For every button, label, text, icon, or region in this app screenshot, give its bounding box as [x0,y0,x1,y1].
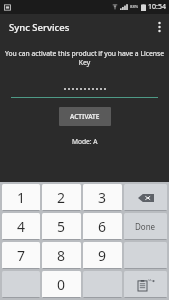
button[interactable]: 2 [42,184,81,211]
button[interactable]: Symbols [2,271,40,298]
staticText: 0 [57,275,66,294]
staticText: 7 [17,246,26,265]
staticText: 8 [57,246,66,265]
staticText: Done [135,221,156,232]
staticText: 4 [17,217,26,236]
button[interactable]: Backspace [124,184,167,211]
button[interactable]: Space [83,271,122,298]
button[interactable]: 8 [42,242,81,269]
button[interactable]: 6 [83,213,122,240]
staticText: 10:54 [148,2,166,12]
staticText: 6 [98,217,107,236]
button[interactable]: Enter [124,242,167,269]
staticText: 1 [17,188,26,207]
button[interactable]: 1 [2,184,40,211]
staticText: You can activate this product if you hav… [0,49,169,67]
staticText: Sync Services [9,21,70,34]
button[interactable]: 7 [2,242,40,269]
button[interactable]: More options [149,14,169,40]
button[interactable]: Done [124,213,167,240]
button[interactable]: 4 [2,213,40,240]
staticText: ACTIVATE [70,112,100,121]
staticText: 5 [57,217,66,236]
button[interactable]: 0 [42,271,81,298]
staticText: 88% [130,4,139,10]
button[interactable]: ACTIVATE [59,107,111,126]
button[interactable] [11,81,158,98]
staticText: 3 [98,188,107,207]
staticText: 9 [98,246,107,265]
button[interactable]: 3 [83,184,122,211]
button[interactable]: Clipboard [124,271,167,298]
button[interactable]: 5 [42,213,81,240]
button[interactable]: 9 [83,242,122,269]
staticText: 2 [57,188,66,207]
staticText: Mode: A [72,137,98,146]
